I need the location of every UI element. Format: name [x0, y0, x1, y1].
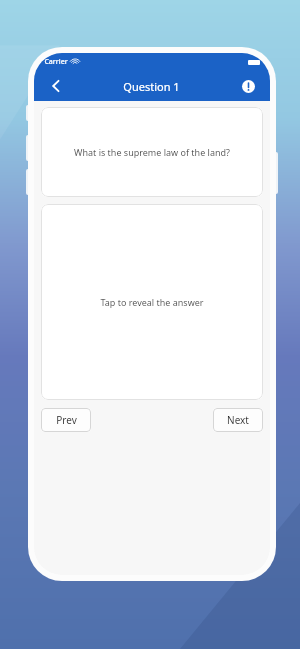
staticText: Next	[227, 413, 249, 427]
button[interactable]: Tap to reveal the answer	[41, 204, 263, 400]
staticText: Question 1	[123, 79, 180, 94]
staticText: Tap to reveal the answer	[100, 296, 204, 308]
button[interactable]: Prev	[41, 408, 91, 432]
button[interactable]: Back	[44, 74, 68, 98]
button[interactable]: Info	[236, 74, 260, 98]
staticText: Prev	[56, 413, 77, 427]
staticText: What is the supreme law of the land?	[74, 146, 230, 158]
button[interactable]: Next	[213, 408, 263, 432]
button[interactable]: What is the supreme law of the land?	[41, 107, 263, 197]
staticText: Carrier	[44, 57, 68, 67]
